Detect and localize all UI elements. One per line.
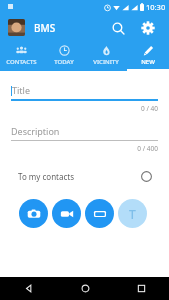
staticText: 10:30 [146,2,166,12]
button[interactable]: CONTACTS [0,42,43,71]
staticText: BMS [34,21,56,35]
staticText: 0 / 400 [11,144,158,153]
button[interactable]: TODAY [43,42,85,71]
staticText: NEW [141,58,155,66]
button[interactable]: Settings [135,15,161,41]
button[interactable]: Back [0,277,57,300]
staticText: CONTACTS [6,58,37,66]
button[interactable]: To my contacts [0,163,169,189]
staticText: 0 / 40 [11,104,158,113]
button[interactable]: Recent apps [113,277,169,300]
button[interactable]: Record video [52,199,81,228]
button[interactable]: Add text [118,199,147,228]
button[interactable]: NEW [127,42,169,71]
button[interactable]: Search [105,15,131,41]
button[interactable]: Take photo [19,199,48,228]
staticText: VICINITY [93,58,119,66]
button[interactable]: Description [11,125,158,153]
button[interactable]: Choose file [85,199,114,228]
staticText: Description [11,125,60,137]
staticText: To my contacts [18,171,75,182]
button[interactable]: Profile [8,19,25,36]
staticText: T [129,206,136,222]
button[interactable]: VICINITY [85,42,127,71]
button[interactable]: Title [11,84,158,113]
button[interactable]: Home [57,277,113,300]
staticText: Title [12,84,30,96]
staticText: TODAY [54,58,74,66]
